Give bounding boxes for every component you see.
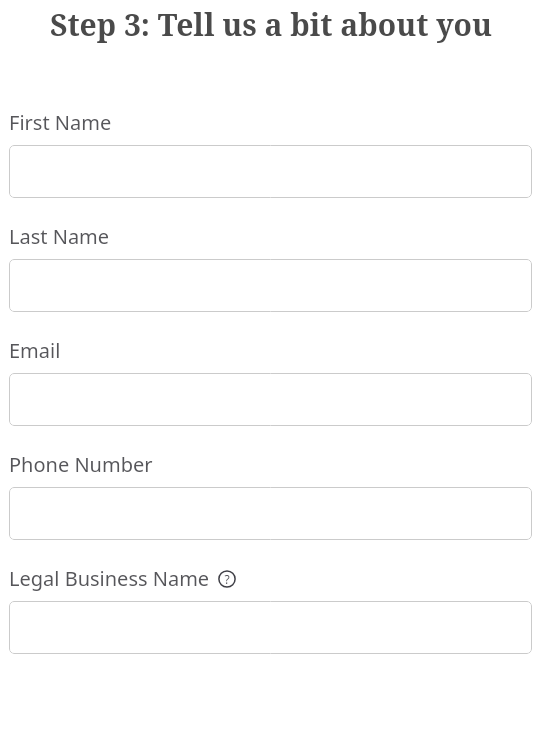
- staticText: Phone Number: [9, 451, 153, 478]
- button[interactable]: Help: what is a legal business name?: [217, 569, 237, 589]
- button[interactable]: [9, 487, 532, 540]
- staticText: Email: [9, 337, 61, 364]
- staticText: Legal Business Name: [9, 565, 210, 592]
- staticText: First Name: [9, 109, 112, 136]
- staticText: ?: [224, 571, 230, 587]
- button[interactable]: [9, 145, 532, 198]
- staticText: Last Name: [9, 223, 110, 250]
- staticText: Step 3: Tell us a bit about you: [50, 4, 492, 45]
- button[interactable]: [9, 259, 532, 312]
- button[interactable]: [9, 373, 532, 426]
- button[interactable]: [9, 601, 532, 654]
